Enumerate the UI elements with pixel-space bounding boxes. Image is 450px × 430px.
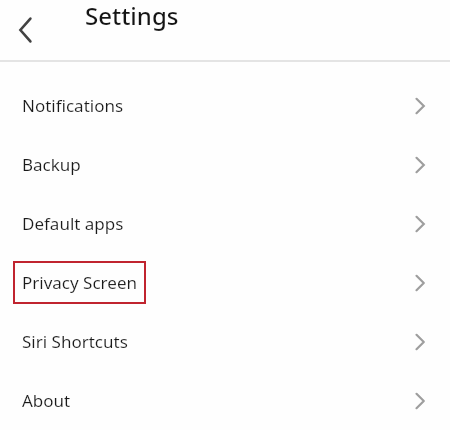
staticText: Backup bbox=[22, 153, 81, 176]
button[interactable]: Privacy Screen bbox=[0, 253, 450, 312]
staticText: Settings bbox=[85, 0, 179, 32]
button[interactable]: Back bbox=[6, 10, 46, 50]
staticText: Siri Shortcuts bbox=[22, 330, 128, 353]
staticText: Default apps bbox=[22, 212, 124, 235]
button[interactable]: Default apps bbox=[0, 194, 450, 253]
button[interactable]: Notifications bbox=[0, 62, 450, 135]
button[interactable]: About bbox=[0, 371, 450, 430]
staticText: About bbox=[22, 389, 71, 412]
button[interactable]: Siri Shortcuts bbox=[0, 312, 450, 371]
button[interactable]: Backup bbox=[0, 135, 450, 194]
staticText: Privacy Screen bbox=[22, 271, 137, 294]
staticText: Notifications bbox=[22, 94, 124, 117]
